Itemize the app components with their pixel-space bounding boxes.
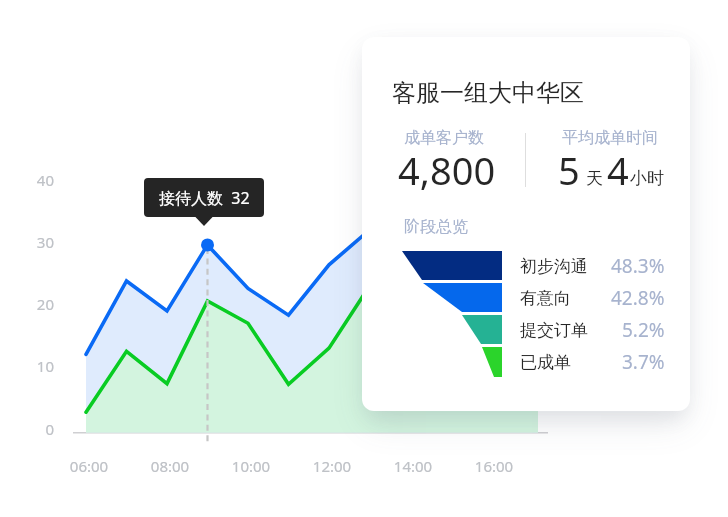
button[interactable]: 有意向 bbox=[520, 288, 665, 320]
staticText: 12:00 bbox=[292, 456, 372, 476]
staticText: 06:00 bbox=[49, 456, 129, 476]
button[interactable]: 初步沟通 bbox=[520, 256, 665, 288]
staticText: 08:00 bbox=[130, 456, 210, 476]
staticText: 接待人数 32 bbox=[159, 187, 250, 209]
staticText: 10:00 bbox=[211, 456, 291, 476]
staticText: 48.3% bbox=[611, 253, 665, 279]
staticText: 10 bbox=[0, 356, 54, 376]
button[interactable]: 已成单 bbox=[520, 352, 665, 384]
button[interactable]: 提交订单 bbox=[520, 320, 665, 352]
staticText: 5.2% bbox=[622, 317, 665, 343]
staticText: 阶段总览 bbox=[404, 217, 468, 237]
staticText: 5 bbox=[558, 144, 580, 196]
staticText: 有意向 bbox=[520, 288, 571, 309]
staticText: 成单客户数 bbox=[404, 128, 484, 148]
staticText: 已成单 bbox=[520, 352, 571, 373]
button[interactable]: 接待人数 32 bbox=[144, 178, 264, 217]
staticText: 天 bbox=[586, 168, 603, 189]
staticText: 小时 bbox=[630, 168, 664, 189]
staticText: 3.7% bbox=[622, 349, 665, 375]
staticText: 客服一组大中华区 bbox=[392, 78, 584, 108]
staticText: 16:00 bbox=[454, 456, 534, 476]
staticText: 30 bbox=[0, 232, 54, 252]
staticText: 4 bbox=[607, 144, 629, 196]
staticText: 平均成单时间 bbox=[562, 128, 658, 148]
staticText: 0 bbox=[0, 419, 54, 439]
staticText: 提交订单 bbox=[520, 320, 588, 341]
staticText: 初步沟通 bbox=[520, 256, 588, 277]
staticText: 42.8% bbox=[611, 285, 665, 311]
staticText: 14:00 bbox=[373, 456, 453, 476]
staticText: 40 bbox=[0, 170, 54, 190]
staticText: 20 bbox=[0, 294, 54, 314]
staticText: 4,800 bbox=[398, 144, 496, 196]
